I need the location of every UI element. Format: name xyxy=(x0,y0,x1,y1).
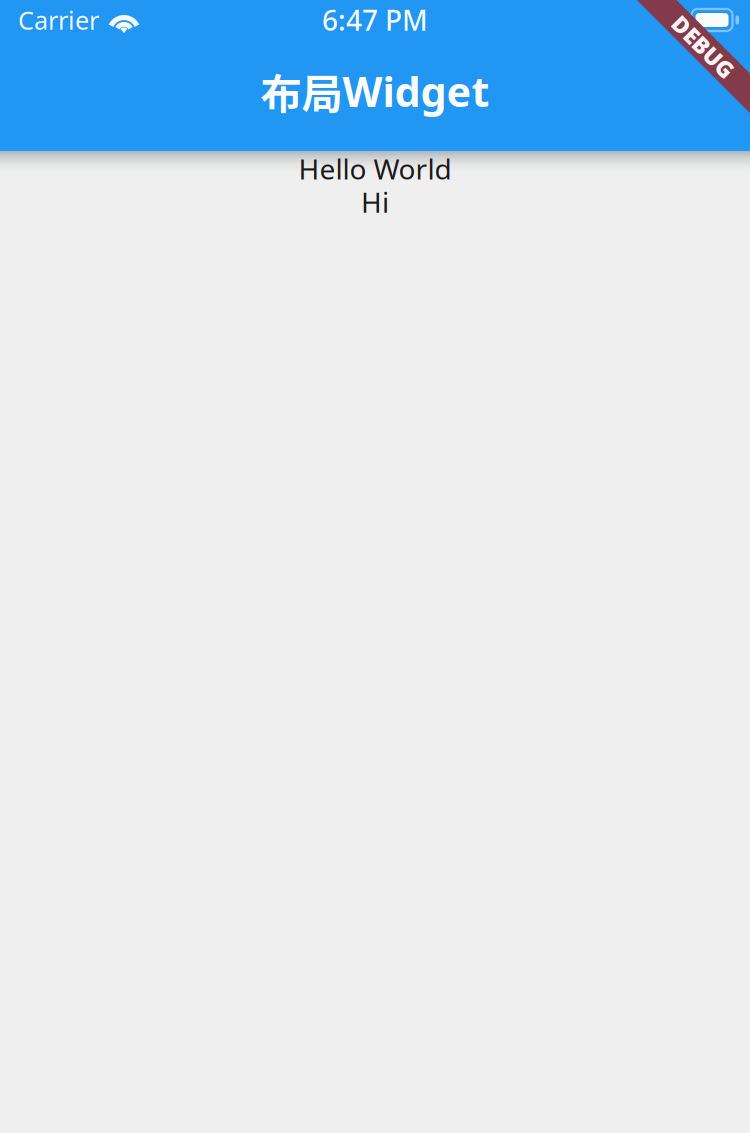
staticText: Carrier xyxy=(18,3,99,37)
staticText: Widget xyxy=(342,64,489,118)
staticText: Hi xyxy=(361,183,389,220)
staticText: Hello World xyxy=(298,150,451,187)
staticText: DEBUG xyxy=(626,16,704,46)
staticText: 布局 xyxy=(260,61,342,121)
staticText: 6:47 PM xyxy=(322,1,428,39)
